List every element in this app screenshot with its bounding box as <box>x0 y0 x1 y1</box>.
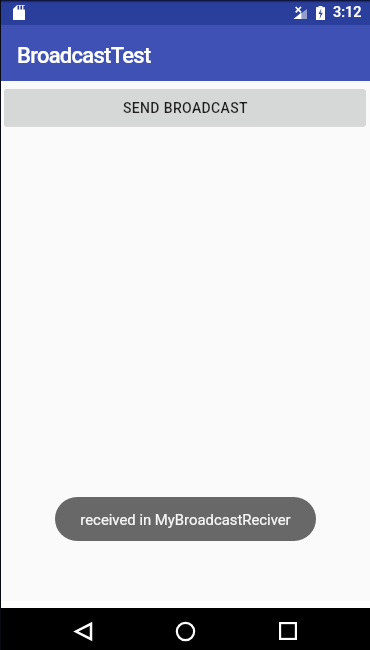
staticText: 3:12 <box>333 4 362 21</box>
staticText: SEND BROADCAST <box>123 100 248 116</box>
button[interactable]: SEND BROADCAST <box>4 89 366 126</box>
button[interactable]: Back <box>53 619 113 643</box>
button[interactable]: Recent apps <box>258 619 318 643</box>
button[interactable]: Home <box>155 619 215 643</box>
staticText: BroadcastTest <box>17 43 151 69</box>
staticText: received in MyBroadcastReciver <box>80 511 291 528</box>
